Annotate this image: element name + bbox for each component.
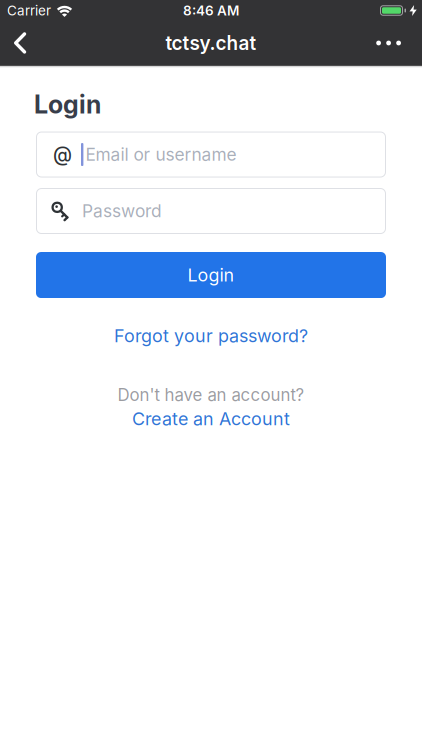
staticText: tctsy.chat xyxy=(165,31,256,54)
staticText: Login xyxy=(187,264,234,286)
button[interactable]: Login xyxy=(36,252,386,298)
staticText: Don't have an account? xyxy=(117,385,304,405)
button[interactable] xyxy=(0,21,42,65)
button[interactable]: Password xyxy=(36,188,386,234)
staticText: Email or username xyxy=(85,144,236,165)
staticText: Carrier xyxy=(7,2,51,19)
button[interactable]: Forgot your password? xyxy=(36,325,386,347)
staticText: Create an Account xyxy=(132,408,290,430)
button[interactable]: @ xyxy=(36,131,386,177)
staticText: Login xyxy=(34,89,101,119)
staticText: 8:46 AM xyxy=(183,2,239,19)
staticText: Forgot your password? xyxy=(114,325,308,347)
staticText: Password xyxy=(82,200,162,221)
button[interactable] xyxy=(362,21,422,65)
button[interactable]: Create an Account xyxy=(36,408,386,430)
staticText: @ xyxy=(53,143,72,166)
